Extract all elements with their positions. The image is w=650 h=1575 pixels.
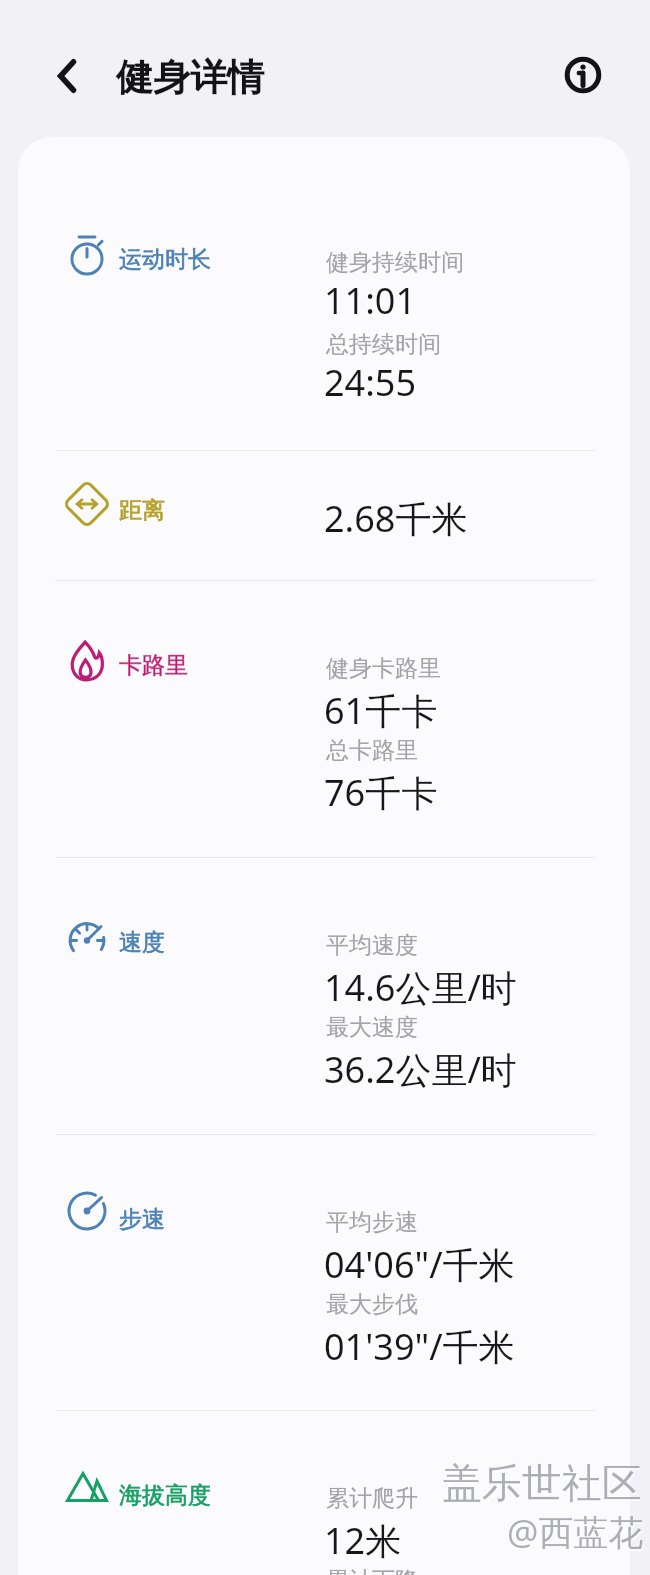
button[interactable]: Back xyxy=(37,46,97,106)
button[interactable]: 健身卡路里 xyxy=(18,580,630,857)
button[interactable]: 速度 xyxy=(65,916,109,960)
staticText: 盖乐世社区 xyxy=(443,1460,643,1510)
staticText: 01'39"/千米 xyxy=(324,1322,515,1371)
staticText: 盖乐世社区 xyxy=(442,1458,642,1508)
staticText: 2.68千米 xyxy=(324,494,468,543)
button[interactable]: 步速 xyxy=(65,1193,109,1237)
staticText: 步速 xyxy=(119,1205,165,1234)
staticText: 健身详情 xyxy=(116,54,264,101)
staticText: 04'06"/千米 xyxy=(324,1240,515,1289)
staticText: 运动时长 xyxy=(119,245,211,274)
staticText: 距离 xyxy=(119,496,165,525)
staticText: 平均步速 xyxy=(326,1208,418,1237)
staticText: 步速 xyxy=(119,1205,165,1234)
staticText: 12米 xyxy=(324,1516,402,1565)
staticText: 76千卡 xyxy=(324,768,438,817)
staticText: 最大步伐 xyxy=(326,1290,418,1319)
button[interactable]: 卡路里 xyxy=(65,639,109,683)
staticText: 累计爬升 xyxy=(326,1484,418,1513)
button[interactable]: 距离 xyxy=(65,482,109,526)
staticText: 距离 xyxy=(119,496,165,525)
button[interactable]: 健身持续时间 xyxy=(18,137,630,450)
staticText: 平均速度 xyxy=(326,931,418,960)
staticText: 总持续时间 xyxy=(326,330,441,359)
staticText: 速度 xyxy=(119,928,165,957)
staticText: 14.6公里/时 xyxy=(324,963,517,1012)
staticText: 海拔高度 xyxy=(119,1481,211,1510)
staticText: 总卡路里 xyxy=(326,736,418,765)
button[interactable]: 2.68千米 xyxy=(18,450,630,580)
staticText: 累计下降 xyxy=(326,1566,418,1575)
button[interactable]: 累计爬升 xyxy=(18,1410,630,1575)
staticText: 36.2公里/时 xyxy=(324,1045,517,1094)
button[interactable]: 平均速度 xyxy=(18,857,630,1134)
staticText: @西蓝花 xyxy=(508,1510,645,1558)
staticText: 运动时长 xyxy=(119,245,211,274)
staticText: 健身卡路里 xyxy=(326,654,441,683)
button[interactable]: 平均步速 xyxy=(18,1134,630,1410)
staticText: 最大速度 xyxy=(326,1013,418,1042)
button[interactable]: Info xyxy=(553,45,613,105)
staticText: 卡路里 xyxy=(119,651,188,680)
staticText: 11:01 xyxy=(324,276,417,325)
staticText: 61千卡 xyxy=(324,686,438,735)
staticText: 海拔高度 xyxy=(119,1481,211,1510)
button[interactable]: 运动时长 xyxy=(65,233,109,277)
staticText: 卡路里 xyxy=(119,651,188,680)
staticText: 健身持续时间 xyxy=(326,248,464,277)
staticText: @西蓝花 xyxy=(507,1508,644,1556)
staticText: 24:55 xyxy=(324,358,417,407)
button[interactable]: 海拔高度 xyxy=(65,1469,109,1513)
staticText: 速度 xyxy=(119,928,165,957)
